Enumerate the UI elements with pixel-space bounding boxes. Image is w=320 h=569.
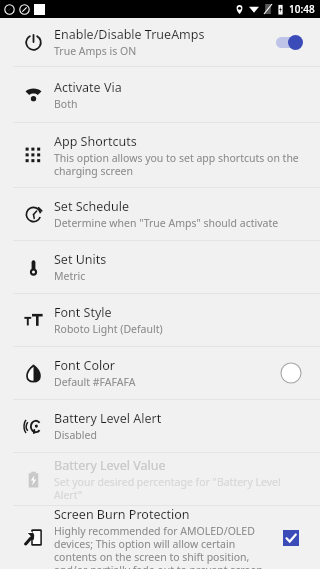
other: Set Schedule [24,205,43,224]
button[interactable]: Enable/Disable TrueAmps [0,18,320,66]
button[interactable]: Battery Level Value [0,453,320,505]
button[interactable]: Screen burn protection [283,530,299,546]
button[interactable]: Battery Level Alert [0,400,320,452]
staticText: Set your desired percentage for "Battery… [54,475,304,502]
other: App Shortcuts [25,147,42,164]
staticText: Set Schedule [54,198,130,215]
staticText: Enable/Disable TrueAmps [54,26,205,43]
staticText: Disabled [54,428,97,442]
staticText: True Amps is ON [54,44,137,58]
staticText: Metric [54,269,86,283]
staticText: Battery Level Alert [54,410,162,427]
staticText: Determine when "True Amps" should activa… [54,216,279,230]
button[interactable]: Set Units [0,241,320,293]
staticText: Both [54,97,78,111]
button[interactable]: Set Schedule [0,188,320,240]
other: Screen Burn Protection [24,528,43,547]
staticText: This option allows you to set app shortc… [54,151,304,178]
button[interactable]: Toggle TrueAmps [274,32,308,52]
staticText: Font Color [54,357,115,374]
staticText: Screen Burn Protection [54,506,190,523]
staticText: Highly recommended for AMOLED/OLED devic… [54,524,266,569]
other: Font Style [24,311,43,330]
staticText: Activate Via [54,79,122,96]
staticText: Roboto Light (Default) [54,322,163,336]
button[interactable]: Pick color [280,362,302,384]
other: Enable/Disable TrueAmps [24,33,43,52]
other: Set Units [24,258,43,277]
button[interactable]: App Shortcuts [0,123,320,187]
staticText: Font Style [54,304,112,321]
button[interactable]: Activate Via [0,67,320,122]
staticText: Battery Level Value [54,457,166,474]
staticText: 10:48 [289,2,315,16]
other: Battery Level Value [25,471,42,488]
staticText: App Shortcuts [54,133,137,150]
other: Font Color [24,364,43,383]
button[interactable]: Font Style [0,294,320,346]
staticText: Set Units [54,251,107,268]
other: Activate Via [24,85,43,104]
button[interactable]: Font Color [0,347,320,399]
staticText: Default #FAFAFA [54,375,136,389]
other: Battery Level Alert [24,417,43,436]
button[interactable]: Screen Burn Protection [0,506,320,569]
